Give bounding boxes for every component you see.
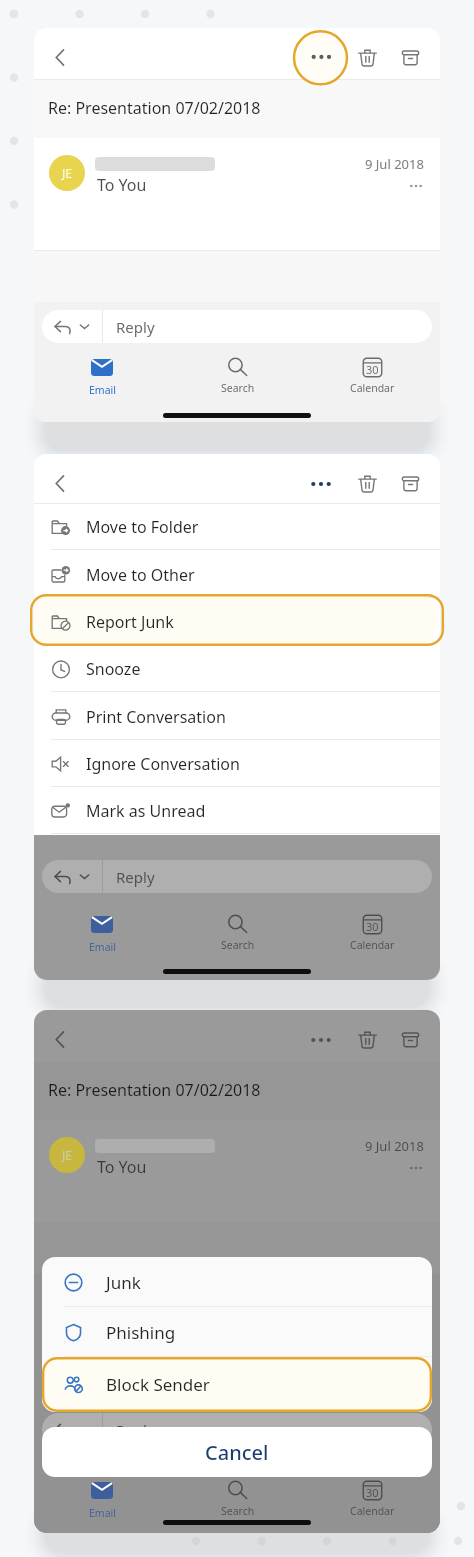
- button[interactable]: Mark as Unread: [34, 787, 440, 834]
- button[interactable]: Phishing: [42, 1307, 432, 1357]
- staticText: Move to Folder: [86, 516, 199, 538]
- staticText: Email: [89, 383, 116, 397]
- staticText: Email: [89, 1506, 116, 1520]
- staticText: 30: [366, 919, 379, 934]
- staticText: Calendar: [350, 1504, 395, 1518]
- staticText: JE: [62, 1147, 72, 1163]
- button[interactable]: Delete: [346, 462, 388, 504]
- button[interactable]: Email: [34, 355, 170, 403]
- staticText: Reply: [116, 317, 155, 337]
- button[interactable]: Move to Folder: [34, 503, 440, 550]
- button[interactable]: Print Conversation: [34, 693, 440, 740]
- staticText: Reply: [116, 867, 155, 887]
- button[interactable]: 30: [305, 912, 440, 960]
- staticText: To You: [97, 174, 147, 196]
- staticText: Re: Presentation 07/02/2018: [48, 1079, 261, 1101]
- staticText: 30: [366, 1485, 379, 1500]
- button[interactable]: Report Junk: [34, 598, 440, 645]
- staticText: Email: [89, 940, 116, 954]
- button[interactable]: Snooze: [34, 645, 440, 692]
- button[interactable]: Reply: [42, 860, 432, 893]
- button[interactable]: More options: [296, 34, 345, 83]
- button[interactable]: More options: [299, 36, 342, 79]
- button[interactable]: Report Junk: [30, 594, 444, 646]
- button[interactable]: 30: [305, 355, 440, 403]
- staticText: Print Conversation: [86, 706, 226, 728]
- button[interactable]: Search: [170, 912, 305, 960]
- button[interactable]: Junk: [42, 1257, 432, 1307]
- button[interactable]: Archive: [389, 462, 431, 504]
- staticText: Block Sender: [106, 1373, 210, 1396]
- staticText: Cancel: [205, 1439, 269, 1466]
- staticText: Search: [221, 381, 255, 395]
- button[interactable]: Block Sender: [42, 1357, 432, 1412]
- button[interactable]: Ignore Conversation: [34, 740, 440, 787]
- button[interactable]: More options: [299, 1018, 342, 1061]
- button[interactable]: Email: [34, 1478, 170, 1526]
- button[interactable]: Back: [39, 1018, 81, 1060]
- button[interactable]: Email: [34, 912, 170, 960]
- button[interactable]: Delete: [346, 1018, 388, 1060]
- staticText: Re: Presentation 07/02/2018: [48, 97, 261, 119]
- button[interactable]: Search: [170, 1478, 305, 1526]
- button[interactable]: Reply: [42, 1413, 432, 1446]
- staticText: Phishing: [106, 1321, 176, 1344]
- staticText: To You: [97, 1156, 147, 1178]
- staticText: 30: [366, 362, 379, 377]
- staticText: Search: [221, 938, 255, 952]
- button[interactable]: Archive: [389, 36, 431, 78]
- staticText: 9 Jul 2018: [365, 155, 424, 173]
- button[interactable]: Delete: [346, 36, 388, 78]
- button[interactable]: Move to Other: [34, 551, 440, 598]
- staticText: JE: [62, 165, 72, 181]
- staticText: Reply: [116, 1420, 155, 1440]
- button[interactable]: Cancel: [42, 1427, 432, 1477]
- button[interactable]: 30: [305, 1478, 440, 1526]
- staticText: Ignore Conversation: [86, 753, 240, 775]
- staticText: Search: [221, 1504, 255, 1518]
- staticText: Junk: [106, 1271, 141, 1294]
- button[interactable]: Back: [39, 36, 81, 78]
- staticText: Report Junk: [86, 611, 174, 633]
- staticText: 9 Jul 2018: [365, 1137, 424, 1155]
- button[interactable]: More options: [299, 462, 342, 505]
- button[interactable]: Reply: [42, 310, 432, 343]
- staticText: Move to Other: [86, 564, 195, 586]
- staticText: Calendar: [350, 381, 395, 395]
- button[interactable]: Back: [39, 462, 81, 504]
- button[interactable]: Search: [170, 355, 305, 403]
- staticText: Mark as Unread: [86, 800, 206, 822]
- staticText: Calendar: [350, 938, 395, 952]
- button[interactable]: Archive: [389, 1018, 431, 1060]
- staticText: Snooze: [86, 658, 141, 680]
